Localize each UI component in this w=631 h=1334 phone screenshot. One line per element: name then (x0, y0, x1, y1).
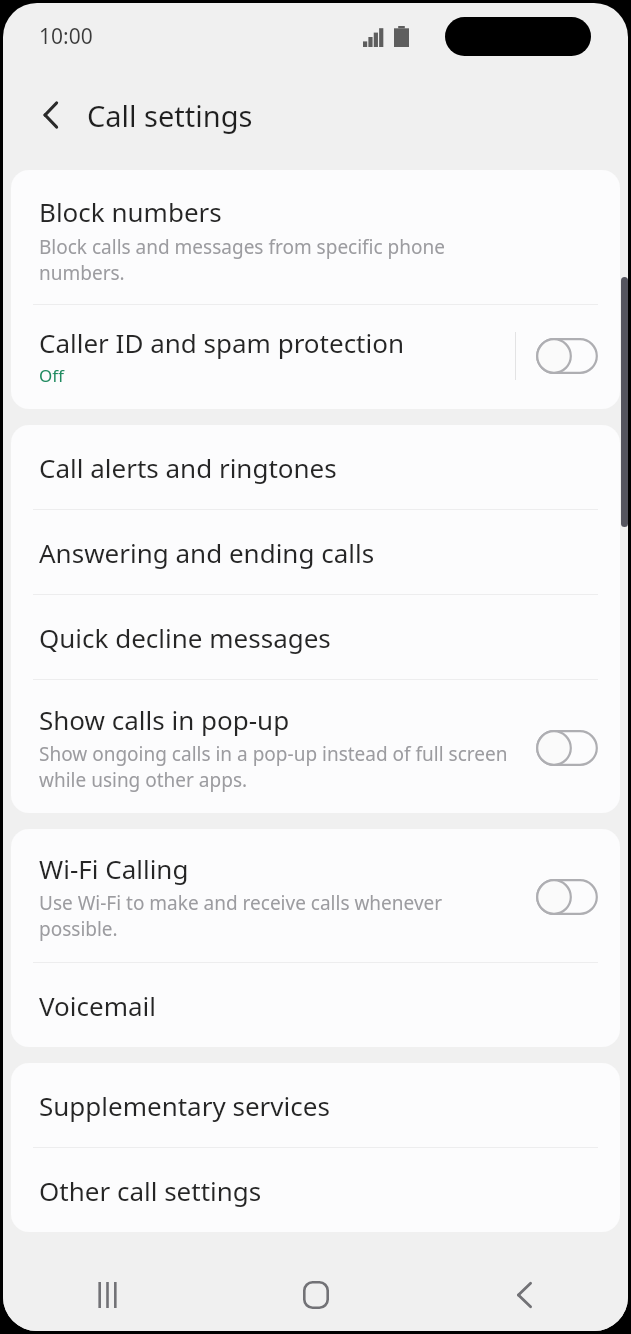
staticText: Off (39, 364, 64, 387)
button[interactable]: Toggle switch, off (536, 338, 598, 374)
button[interactable]: Quick decline messages (11, 595, 620, 679)
staticText: Supplementary services (39, 1088, 330, 1123)
staticText: Show calls in pop-up (39, 702, 290, 737)
button[interactable]: Toggle switch, off (536, 879, 598, 915)
staticText: Call settings (87, 96, 253, 135)
button[interactable]: Home (212, 1259, 420, 1331)
staticText: Show ongoing calls in a pop-up instead o… (39, 741, 524, 793)
staticText: Block calls and messages from specific p… (39, 234, 510, 286)
button[interactable]: Block numbers (11, 170, 620, 304)
staticText: Quick decline messages (39, 620, 331, 655)
staticText: Block numbers (39, 194, 222, 229)
button[interactable]: Recent apps (3, 1259, 212, 1331)
staticText: Voicemail (39, 988, 156, 1023)
button[interactable]: Call alerts and ringtones (11, 425, 620, 509)
button[interactable]: Back (420, 1259, 628, 1331)
button[interactable]: Toggle switch, off (536, 730, 598, 766)
button[interactable]: Navigate up (25, 89, 77, 141)
button[interactable]: Caller ID and spam protection (11, 305, 620, 409)
staticText: 10:00 (39, 22, 93, 51)
staticText: Answering and ending calls (39, 535, 375, 570)
staticText: Caller ID and spam protection (39, 325, 405, 360)
button[interactable]: Supplementary services (11, 1063, 620, 1147)
staticText: Call alerts and ringtones (39, 450, 337, 485)
button[interactable]: Wi-Fi Calling (11, 829, 620, 962)
button[interactable]: Show calls in pop-up (11, 680, 620, 813)
button[interactable]: Other call settings (11, 1148, 620, 1232)
staticText: Other call settings (39, 1173, 262, 1208)
staticText: Wi-Fi Calling (39, 851, 189, 886)
staticText: Use Wi-Fi to make and receive calls when… (39, 890, 524, 942)
button[interactable]: Voicemail (11, 963, 620, 1047)
button[interactable]: Answering and ending calls (11, 510, 620, 594)
